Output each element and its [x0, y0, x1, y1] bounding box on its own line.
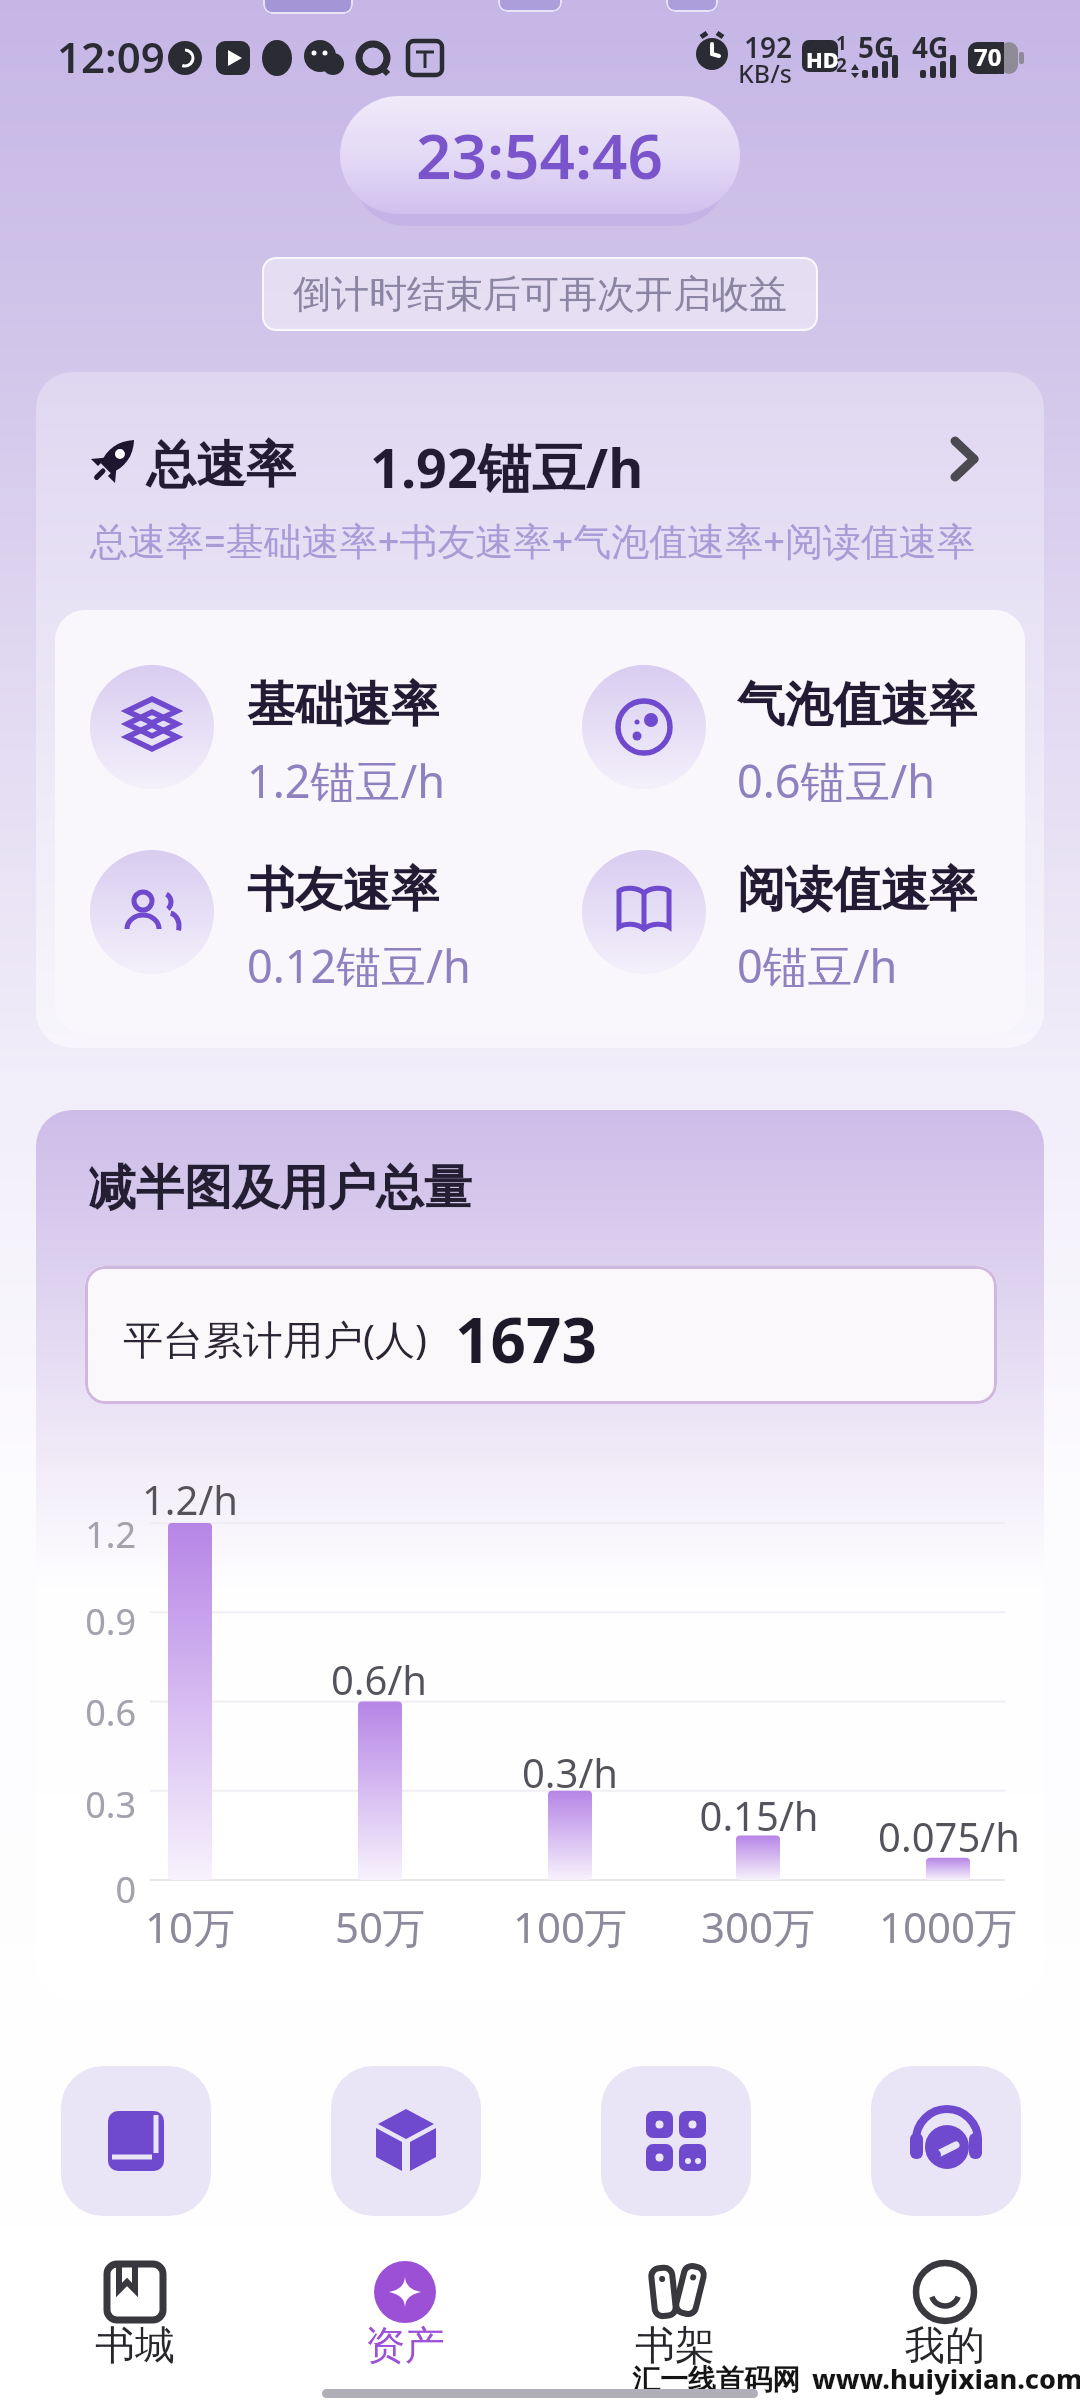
button[interactable]	[331, 2066, 481, 2216]
button[interactable]: 书架	[585, 2238, 765, 2388]
staticText: 汇一线首码网	[632, 2362, 800, 2397]
button[interactable]	[871, 2066, 1021, 2216]
staticText: 0.9	[56, 1597, 136, 1646]
staticText: 0锚豆/h	[737, 935, 898, 996]
staticText: 0.6	[56, 1688, 136, 1737]
staticText: www.huiyixian.com	[812, 2360, 1080, 2397]
staticText: 0	[56, 1865, 136, 1914]
staticText: 0.075/h	[869, 1809, 1029, 1863]
staticText: 1.2	[56, 1510, 136, 1559]
staticText: 0.3/h	[490, 1745, 650, 1799]
staticText: 书城	[45, 2320, 225, 2370]
staticText: 0.6锚豆/h	[737, 750, 936, 811]
staticText: 1	[836, 30, 847, 56]
staticText: 0.6/h	[299, 1652, 459, 1706]
staticText: 50万	[300, 1898, 460, 1955]
staticText: 0.12锚豆/h	[247, 935, 471, 996]
staticText: 倒计时结束后可再次开启收益	[293, 270, 787, 318]
staticText: 192	[744, 28, 793, 66]
staticText: 总速率	[146, 434, 296, 497]
staticText: 100万	[490, 1898, 650, 1955]
staticText: 阅读值速率	[737, 860, 977, 920]
staticText: 书友速率	[247, 860, 439, 920]
staticText: 基础速率	[247, 675, 439, 735]
staticText: 1000万	[868, 1898, 1028, 1955]
staticText: 23:54:46	[416, 113, 664, 197]
staticText: 1.92锚豆/h	[370, 430, 644, 504]
staticText: KB/s	[738, 56, 792, 90]
button[interactable]: 23:54:46	[340, 96, 740, 214]
staticText: 平台累计用户(人)	[123, 1311, 427, 1366]
staticText: 10万	[110, 1898, 270, 1955]
staticText: 1.2锚豆/h	[247, 750, 446, 811]
staticText: 1673	[455, 1297, 597, 1381]
staticText: 12:09	[57, 28, 165, 85]
button[interactable]	[601, 2066, 751, 2216]
staticText: 0.3	[56, 1780, 136, 1829]
button[interactable]: 资产	[315, 2238, 495, 2388]
staticText: 气泡值速率	[737, 675, 977, 735]
button[interactable]	[76, 416, 1016, 506]
staticText: HD	[806, 44, 839, 74]
staticText: 0.15/h	[679, 1788, 839, 1842]
staticText: 我的	[855, 2320, 1035, 2370]
staticText: 4G	[912, 28, 949, 66]
staticText: 300万	[678, 1898, 838, 1955]
staticText: 资产	[315, 2320, 495, 2370]
staticText: 减半图及用户总量	[88, 1158, 472, 1218]
staticText: 5G	[858, 28, 895, 66]
button[interactable]	[61, 2066, 211, 2216]
staticText: 书架	[585, 2320, 765, 2370]
button[interactable]: 书城	[45, 2238, 225, 2388]
staticText: 1.2/h	[110, 1472, 270, 1526]
button[interactable]: 我的	[855, 2238, 1035, 2388]
staticText: 2	[836, 52, 847, 78]
staticText: 总速率=基础速率+书友速率+气泡值速率+阅读值速率	[90, 514, 975, 566]
staticText: 70	[974, 40, 1002, 73]
